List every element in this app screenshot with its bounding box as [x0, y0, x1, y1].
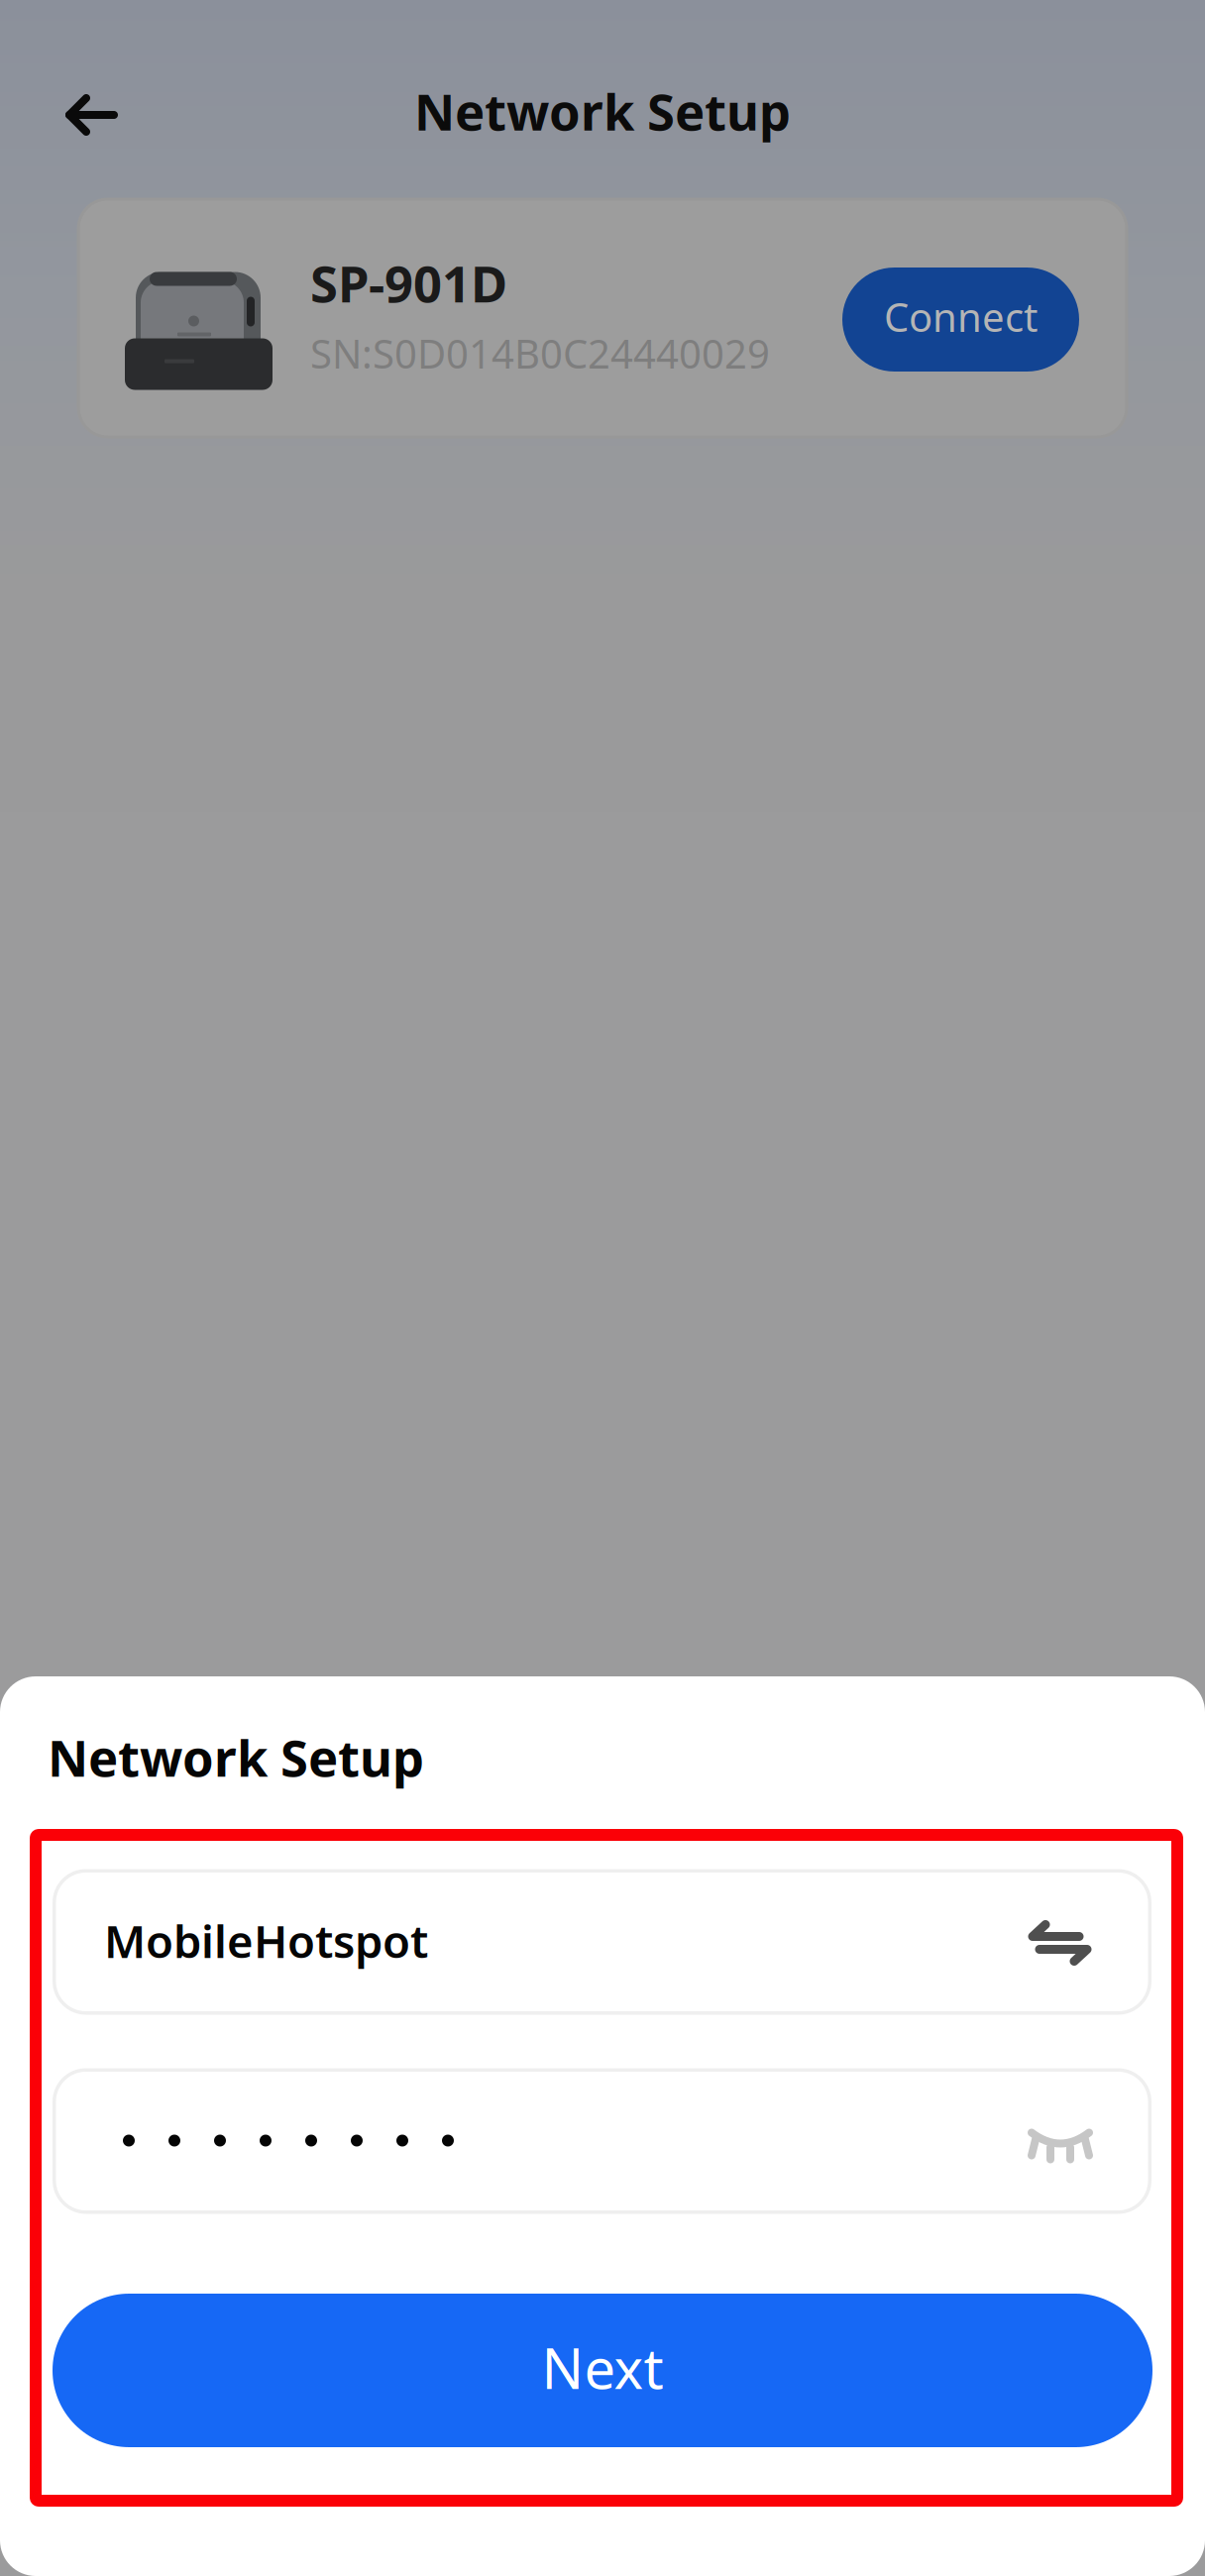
button[interactable]: Show password [1016, 2117, 1105, 2174]
button[interactable]: Next [53, 2294, 1152, 2447]
staticText: Next [542, 2331, 663, 2404]
staticText: MobileHotspot [104, 1911, 428, 1970]
staticText: SN:S0D014B0C24440029 [310, 327, 770, 380]
staticText: SP-901D [310, 250, 507, 316]
staticText: Connect [884, 290, 1038, 343]
staticText: Network Setup [48, 1724, 424, 1791]
staticText: Network Setup [414, 78, 791, 144]
button[interactable]: Back [38, 61, 145, 168]
button[interactable]: Connect [842, 268, 1079, 372]
button[interactable]: Switch network [1016, 1909, 1103, 1978]
